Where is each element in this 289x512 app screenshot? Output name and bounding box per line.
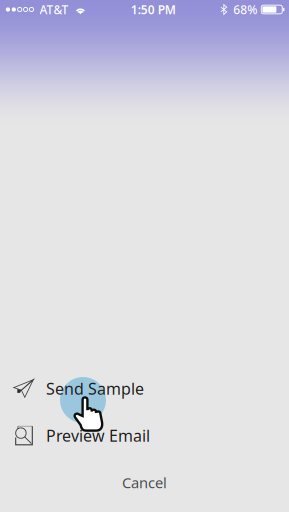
staticText: Cancel xyxy=(122,473,167,492)
staticText: AT&T xyxy=(40,1,69,17)
staticText: Send Sample xyxy=(46,378,144,399)
staticText: Preview Email xyxy=(46,425,150,446)
staticText: 68% xyxy=(233,1,257,17)
button[interactable]: Cancel xyxy=(0,460,289,505)
button[interactable]: Preview Email xyxy=(0,411,289,460)
button[interactable]: Send Sample xyxy=(0,366,289,411)
staticText: 1:50 PM xyxy=(131,1,176,17)
